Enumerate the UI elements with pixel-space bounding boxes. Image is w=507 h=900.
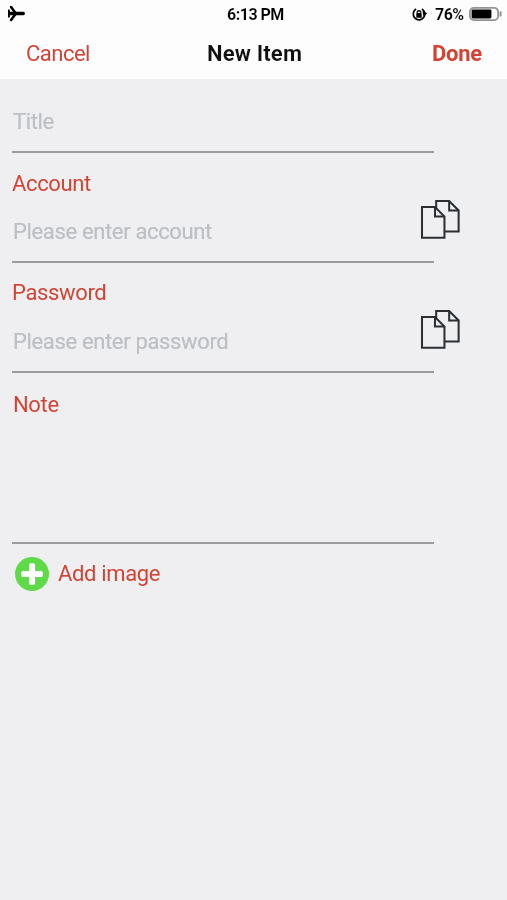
button[interactable]: Account xyxy=(0,153,507,261)
staticText: Cancel xyxy=(26,41,90,67)
button[interactable]: Password xyxy=(0,263,507,371)
staticText: Please enter account xyxy=(13,219,212,245)
staticText: Password xyxy=(12,280,107,306)
button[interactable]: Add image xyxy=(15,555,167,593)
button[interactable]: Done xyxy=(410,31,507,77)
button[interactable]: Copy account xyxy=(416,195,464,243)
staticText: 76% xyxy=(435,5,464,24)
button[interactable]: Cancel xyxy=(0,31,112,77)
button[interactable]: Note xyxy=(0,373,507,542)
button[interactable]: Copy password xyxy=(416,305,464,353)
staticText: New Item xyxy=(207,41,303,67)
staticText: Note xyxy=(13,392,59,418)
staticText: Please enter password xyxy=(13,329,229,355)
button[interactable]: Title xyxy=(0,80,507,151)
staticText: Add image xyxy=(58,561,161,587)
staticText: 6:13 PM xyxy=(227,5,284,24)
staticText: Title xyxy=(13,109,54,135)
staticText: Account xyxy=(12,171,91,197)
staticText: Done xyxy=(432,41,482,67)
